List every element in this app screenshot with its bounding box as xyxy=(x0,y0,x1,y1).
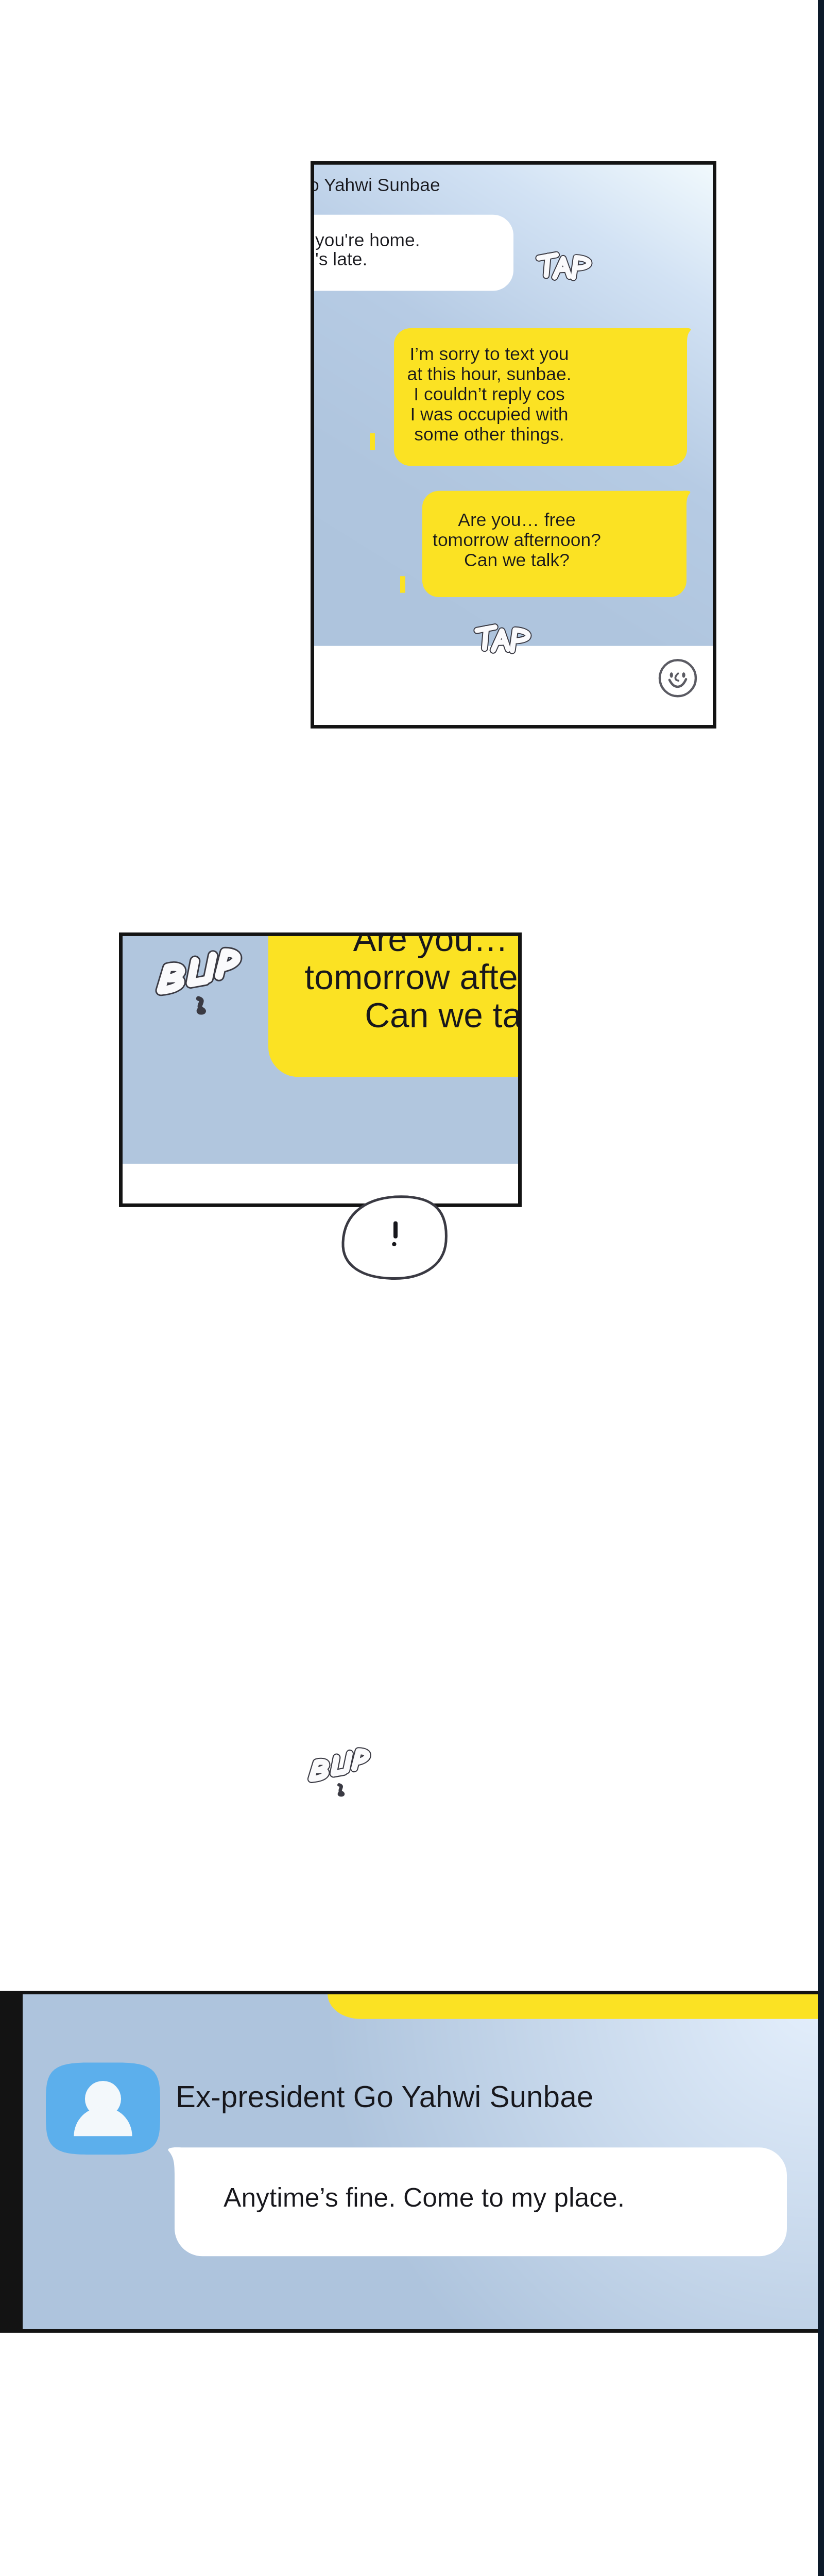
staticText: Are you… free tomorrow afternoon? Can we… xyxy=(304,935,518,1035)
staticText: Are you… free tomorrow afternoon? Can we… xyxy=(433,510,601,570)
staticText: Ex-president Go Yahwi Sunbae xyxy=(176,2080,594,2113)
staticText: I’m sorry to text you at this hour, sunb… xyxy=(407,344,572,444)
staticText: Anytime’s fine. Come to my place. xyxy=(224,2182,625,2212)
staticText: o Yahwi Sunbae xyxy=(314,175,440,195)
staticText: you're home. 's late. xyxy=(315,230,420,269)
button[interactable]: Chat conversation with Go Yahwi Sunbae xyxy=(314,164,713,726)
